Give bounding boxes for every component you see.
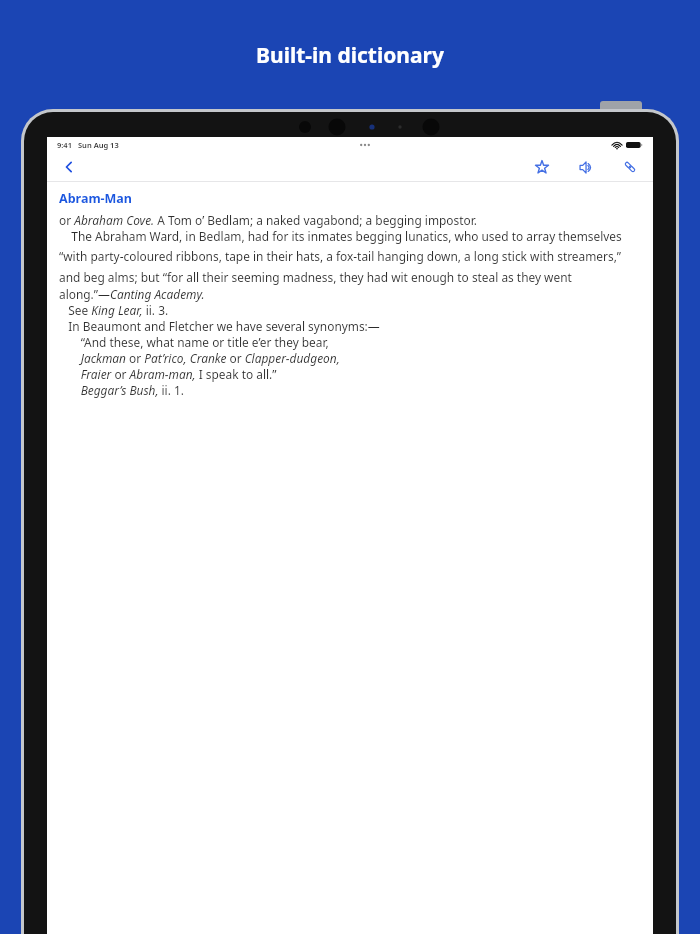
staticText: Fraier or Abram-man, I speak to all.”: [59, 366, 277, 382]
staticText: See King Lear, ii. 3.: [59, 302, 169, 318]
staticText: along.”—Canting Academy.: [59, 286, 205, 302]
staticText: The Abraham Ward, in Bedlam, had for its…: [59, 228, 641, 286]
staticText: or Abraham Cove. A Tom o’ Bedlam; a nake…: [59, 212, 477, 228]
button[interactable]: Copy link: [617, 154, 643, 180]
staticText: 9:41: [57, 140, 72, 150]
staticText: Sun Aug 13: [78, 140, 119, 150]
staticText: Jackman or Pat’rico, Cranke or Clapper-d…: [59, 350, 340, 366]
staticText: “And these, what name or title e’er they…: [59, 334, 329, 350]
staticText: Beggar’s Bush, ii. 1.: [59, 382, 184, 398]
staticText: Abram-Man: [59, 190, 132, 207]
button[interactable]: Add to favorites: [529, 154, 555, 180]
button[interactable]: Pronounce: [573, 154, 599, 180]
staticText: In Beaumont and Fletcher we have several…: [59, 318, 380, 334]
button[interactable]: Back: [55, 153, 83, 181]
staticText: Built-in dictionary: [256, 41, 444, 70]
